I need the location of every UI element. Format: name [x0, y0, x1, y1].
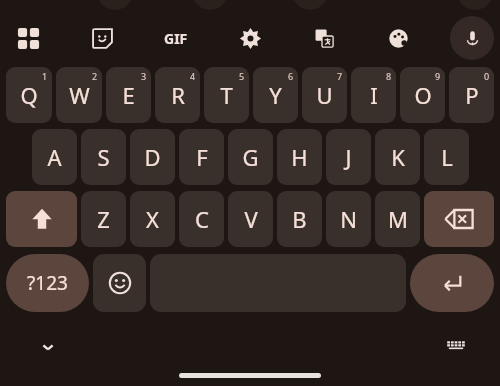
button[interactable]: C	[179, 191, 224, 247]
button[interactable]: D	[130, 129, 175, 185]
staticText: M	[388, 204, 408, 234]
button[interactable]: Hide keyboard	[30, 329, 66, 365]
button[interactable]: Stickers	[80, 16, 124, 60]
button[interactable]: Translate	[302, 16, 346, 60]
staticText: 0	[484, 70, 490, 82]
staticText: J	[345, 142, 352, 172]
staticText: 5	[239, 70, 245, 82]
staticText: A	[47, 142, 62, 172]
button[interactable]: Apps	[6, 16, 50, 60]
staticText: 7	[337, 70, 343, 82]
button[interactable]: L	[424, 129, 469, 185]
staticText: 3	[141, 70, 147, 82]
button[interactable]: W	[56, 67, 102, 123]
staticText: S	[97, 142, 110, 172]
staticText: 9	[435, 70, 441, 82]
staticText: 1	[42, 70, 48, 82]
button[interactable]: Emoji	[93, 254, 146, 312]
staticText: P	[465, 80, 479, 110]
button[interactable]: M	[375, 191, 420, 247]
staticText: Y	[269, 80, 282, 110]
staticText: GIF	[164, 29, 188, 48]
staticText: Z	[97, 204, 110, 234]
staticText: V	[244, 204, 258, 234]
button[interactable]: X	[130, 191, 175, 247]
staticText: C	[195, 204, 209, 234]
staticText: 6	[288, 70, 294, 82]
button[interactable]: Y	[253, 67, 298, 123]
staticText: K	[391, 142, 405, 172]
staticText: L	[441, 142, 453, 172]
staticText: W	[69, 80, 90, 110]
button[interactable]: T	[204, 67, 249, 123]
staticText: B	[292, 204, 307, 234]
button[interactable]: S	[81, 129, 126, 185]
staticText: 4	[190, 70, 196, 82]
button[interactable]: G	[228, 129, 273, 185]
button[interactable]: U	[302, 67, 347, 123]
button[interactable]: N	[326, 191, 371, 247]
button[interactable]: Voice input	[450, 16, 494, 60]
button[interactable]: P	[449, 67, 494, 123]
button[interactable]: E	[106, 67, 151, 123]
staticText: X	[146, 204, 159, 234]
button[interactable]: O	[400, 67, 445, 123]
staticText: I	[370, 80, 378, 110]
button[interactable]: F	[179, 129, 224, 185]
button[interactable]: GIF	[154, 16, 198, 60]
staticText: H	[291, 142, 308, 172]
button[interactable]: Settings	[228, 16, 272, 60]
staticText: D	[144, 142, 161, 172]
button[interactable]: R	[155, 67, 200, 123]
staticText: G	[242, 142, 259, 172]
button[interactable]: Switch keyboard	[438, 329, 474, 365]
staticText: Q	[20, 80, 38, 110]
button[interactable]: H	[277, 129, 322, 185]
button[interactable]: Q	[6, 67, 52, 123]
staticText: ?123	[27, 270, 68, 296]
button[interactable]: A	[32, 129, 77, 185]
button[interactable]: Enter	[410, 254, 494, 312]
staticText: F	[196, 142, 208, 172]
button[interactable]: I	[351, 67, 396, 123]
button[interactable]: Backspace	[424, 191, 494, 247]
staticText: 2	[92, 70, 98, 82]
staticText: E	[122, 80, 135, 110]
button[interactable]: ?123	[6, 254, 89, 312]
button[interactable]: V	[228, 191, 273, 247]
staticText: O	[414, 80, 432, 110]
staticText: N	[340, 204, 357, 234]
button[interactable]: Themes	[376, 16, 420, 60]
staticText: U	[316, 80, 333, 110]
staticText: T	[220, 80, 233, 110]
button[interactable]: Z	[81, 191, 126, 247]
staticText: R	[171, 80, 185, 110]
button[interactable]: J	[326, 129, 371, 185]
button[interactable]: K	[375, 129, 420, 185]
staticText: 8	[386, 70, 392, 82]
button[interactable]: Shift	[6, 191, 77, 247]
button[interactable]: B	[277, 191, 322, 247]
